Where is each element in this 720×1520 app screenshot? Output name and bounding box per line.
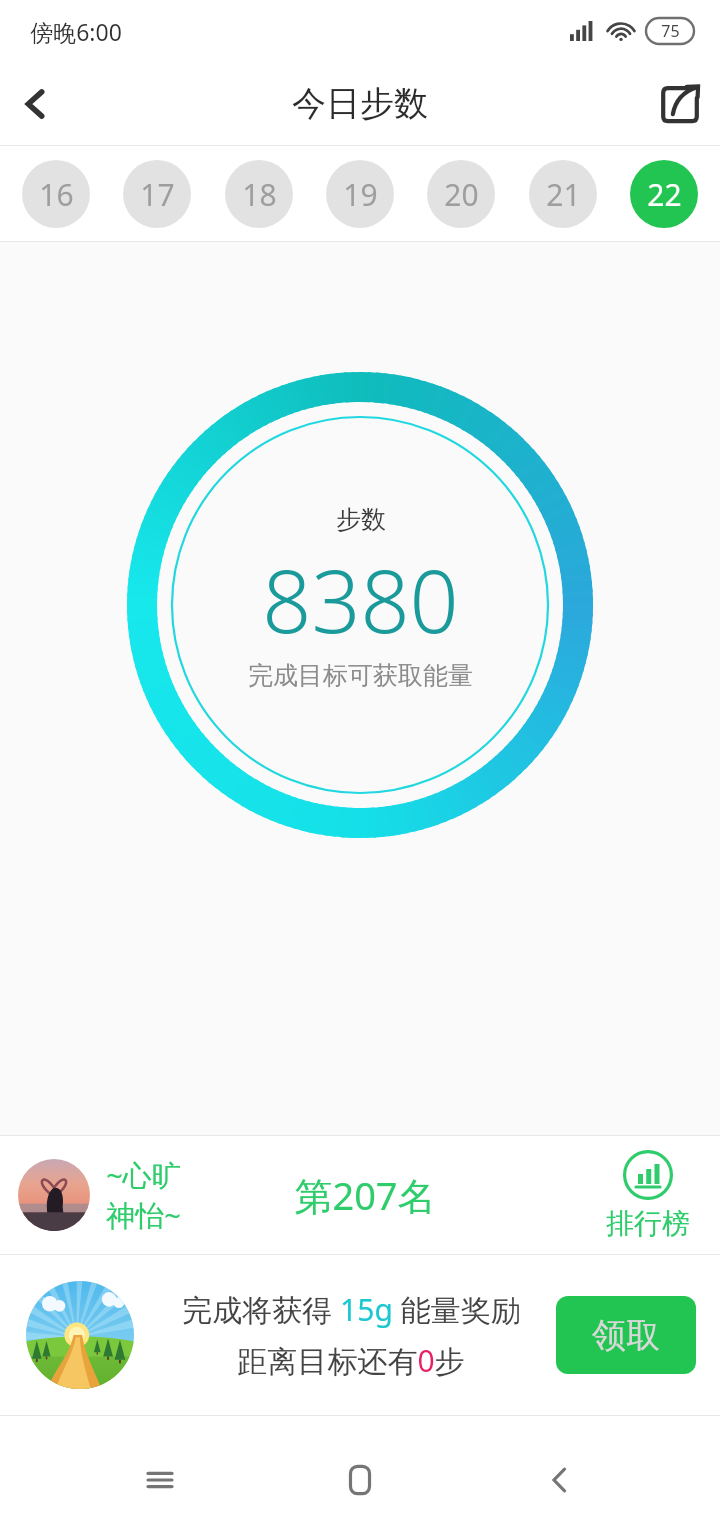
staticText: 8380 xyxy=(262,541,459,658)
staticText: 距离目标还有0步 xyxy=(237,1340,465,1381)
staticText: 19 xyxy=(343,174,378,215)
staticText: 步数 xyxy=(336,504,386,535)
staticText: 领取 xyxy=(592,1314,660,1357)
button[interactable]: 16 xyxy=(22,160,90,228)
button[interactable]: 19 xyxy=(326,160,394,228)
staticText: 完成目标可获取能量 xyxy=(248,660,473,691)
button[interactable]: 22 xyxy=(630,160,698,228)
button[interactable]: Profile avatar xyxy=(18,1159,90,1231)
button[interactable]: 排行榜 xyxy=(584,1150,712,1241)
button[interactable]: Recent apps xyxy=(120,1440,200,1520)
staticText: 16 xyxy=(39,174,74,215)
staticText: 傍晚6:00 xyxy=(30,16,122,47)
staticText: 第207名 xyxy=(294,1169,436,1221)
button[interactable]: Back xyxy=(520,1440,600,1520)
staticText: 20 xyxy=(444,174,479,215)
button[interactable]: 领取 xyxy=(556,1296,696,1374)
staticText: 完成将获得 15g 能量奖励 xyxy=(182,1289,521,1330)
staticText: 神怡~ xyxy=(106,1195,181,1235)
staticText: 今日步数 xyxy=(292,82,428,125)
button[interactable]: Back xyxy=(0,68,72,140)
staticText: 21 xyxy=(546,174,581,215)
button[interactable]: 21 xyxy=(529,160,597,228)
button[interactable]: Home xyxy=(320,1440,400,1520)
button[interactable]: 17 xyxy=(123,160,191,228)
button[interactable]: 20 xyxy=(427,160,495,228)
staticText: 75 xyxy=(661,20,680,42)
staticText: 22 xyxy=(647,174,682,215)
staticText: ~心旷 xyxy=(106,1155,181,1195)
button[interactable]: Share xyxy=(640,64,720,144)
staticText: 排行榜 xyxy=(606,1206,690,1241)
staticText: 18 xyxy=(242,174,277,215)
button[interactable]: 18 xyxy=(225,160,293,228)
staticText: 17 xyxy=(140,174,175,215)
